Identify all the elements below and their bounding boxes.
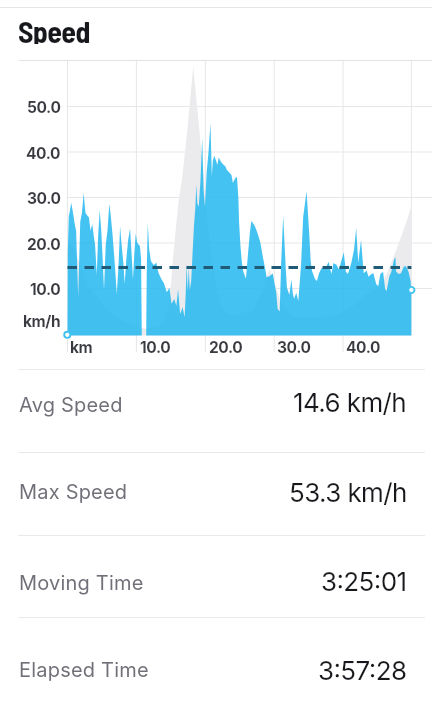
staticText: 3:25:01 xyxy=(321,566,407,597)
staticText: 14.6 km/h xyxy=(293,387,407,418)
staticText: km xyxy=(70,338,93,355)
staticText: 50.0 xyxy=(27,98,61,117)
staticText: 30.0 xyxy=(277,338,311,355)
button[interactable] xyxy=(0,369,432,452)
staticText: 10.0 xyxy=(30,280,61,299)
button[interactable] xyxy=(0,617,432,700)
staticText: 3:57:28 xyxy=(318,655,407,686)
staticText: 40.0 xyxy=(26,144,61,163)
staticText: Elapsed Time xyxy=(19,658,149,682)
staticText: 53.3 km/h xyxy=(289,477,407,508)
staticText: 20.0 xyxy=(209,338,243,355)
staticText: km/h xyxy=(23,312,61,331)
staticText: Speed xyxy=(18,13,90,44)
button[interactable] xyxy=(0,535,432,618)
staticText: Moving Time xyxy=(19,571,144,595)
button[interactable] xyxy=(0,452,432,535)
staticText: Avg Speed xyxy=(19,393,123,417)
staticText: Max Speed xyxy=(19,480,128,504)
staticText: 30.0 xyxy=(27,189,61,208)
staticText: 10.0 xyxy=(140,338,171,355)
staticText: 40.0 xyxy=(346,338,381,355)
staticText: 20.0 xyxy=(27,235,61,254)
